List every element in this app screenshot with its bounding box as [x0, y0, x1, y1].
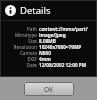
staticText: N860 — [39, 50, 51, 56]
staticText: Details — [20, 4, 51, 17]
staticText: 8.08MB — [39, 38, 56, 44]
staticText: Date — [6, 62, 37, 68]
staticText: Camera — [6, 50, 37, 56]
staticText: 12/08/2002 12:00 PM — [39, 62, 87, 68]
staticText: 4mm — [39, 56, 51, 62]
staticText: EXIF — [6, 56, 37, 62]
staticText: Mimetype — [6, 32, 37, 38]
staticText: Path — [6, 26, 37, 32]
button[interactable]: OK — [24, 82, 74, 96]
staticText: image/jpeg — [39, 32, 66, 38]
staticText: Size — [6, 38, 37, 44]
staticText: 10240x7680=79MP — [39, 44, 82, 50]
staticText: OK — [44, 85, 54, 94]
staticText: content://mms/part/151 — [39, 26, 91, 32]
staticText: Resolution — [6, 44, 37, 50]
